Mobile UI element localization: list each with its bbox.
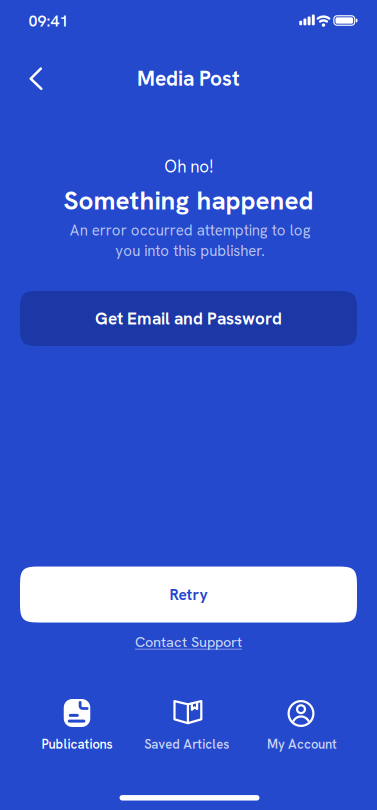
staticText: Retry <box>169 584 207 605</box>
staticText: Media Post <box>137 65 240 92</box>
staticText: 09:41 <box>28 11 68 31</box>
staticText: Contact Support <box>135 633 242 651</box>
button[interactable]: Publications <box>22 695 132 759</box>
button[interactable]: Saved Articles <box>132 695 242 759</box>
staticText: Saved Articles <box>144 736 229 753</box>
staticText: Oh no! <box>164 155 213 178</box>
button[interactable]: My Account <box>250 695 354 759</box>
staticText: Get Email and Password <box>95 307 282 330</box>
staticText: My Account <box>267 736 337 753</box>
button[interactable]: Contact Support <box>135 633 242 651</box>
staticText: Publications <box>41 736 112 753</box>
button[interactable] <box>14 57 58 101</box>
button[interactable]: Retry <box>20 566 357 622</box>
staticText: Something happened <box>63 184 313 217</box>
staticText: An error occurred attempting to log you … <box>69 220 310 261</box>
button[interactable]: Get Email and Password <box>20 291 357 346</box>
